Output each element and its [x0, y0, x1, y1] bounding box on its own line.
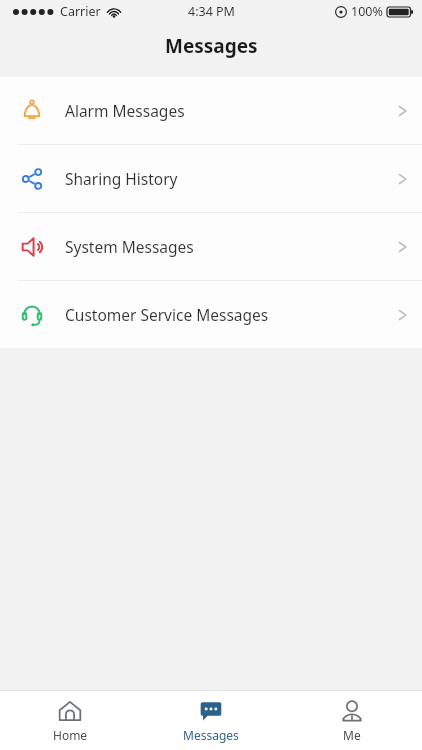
- staticText: Me: [343, 727, 361, 743]
- staticText: 4:34 PM: [188, 3, 235, 20]
- button[interactable]: Customer Service Messages: [0, 281, 422, 348]
- staticText: Messages: [165, 33, 258, 59]
- button[interactable]: Messages: [140, 691, 281, 743]
- staticText: 100%: [351, 3, 383, 20]
- staticText: Alarm Messages: [65, 100, 185, 121]
- button[interactable]: System Messages: [0, 213, 422, 280]
- staticText: Home: [53, 727, 88, 743]
- staticText: Messages: [183, 727, 239, 743]
- staticText: Carrier: [60, 3, 101, 20]
- button[interactable]: Me: [281, 691, 422, 743]
- button[interactable]: Sharing History: [0, 145, 422, 212]
- button[interactable]: Alarm Messages: [0, 77, 422, 144]
- staticText: Customer Service Messages: [65, 304, 269, 325]
- staticText: Sharing History: [65, 168, 178, 189]
- staticText: System Messages: [65, 236, 194, 257]
- button[interactable]: Home: [0, 691, 140, 743]
